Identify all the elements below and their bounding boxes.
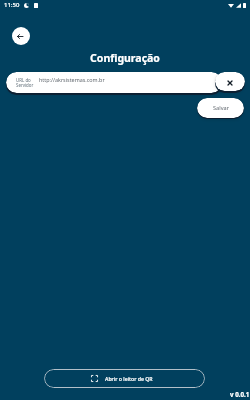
staticText: URL do Servidor xyxy=(16,77,34,89)
staticText: 11:50 xyxy=(4,1,20,9)
button[interactable]: Back xyxy=(12,27,30,45)
staticText: Salvar xyxy=(213,104,229,112)
staticText: Abrir o leitor de QR xyxy=(105,375,153,382)
button[interactable]: Salvar xyxy=(197,98,244,118)
button[interactable]: Abrir o leitor de QR xyxy=(44,369,205,388)
staticText: v 0.0.1 xyxy=(230,390,250,398)
button[interactable]: URL do Servidor xyxy=(6,72,222,93)
button[interactable]: Clear xyxy=(215,72,245,91)
staticText: http://akrsistemas.com.br xyxy=(39,76,105,83)
staticText: Configuração xyxy=(0,51,250,65)
